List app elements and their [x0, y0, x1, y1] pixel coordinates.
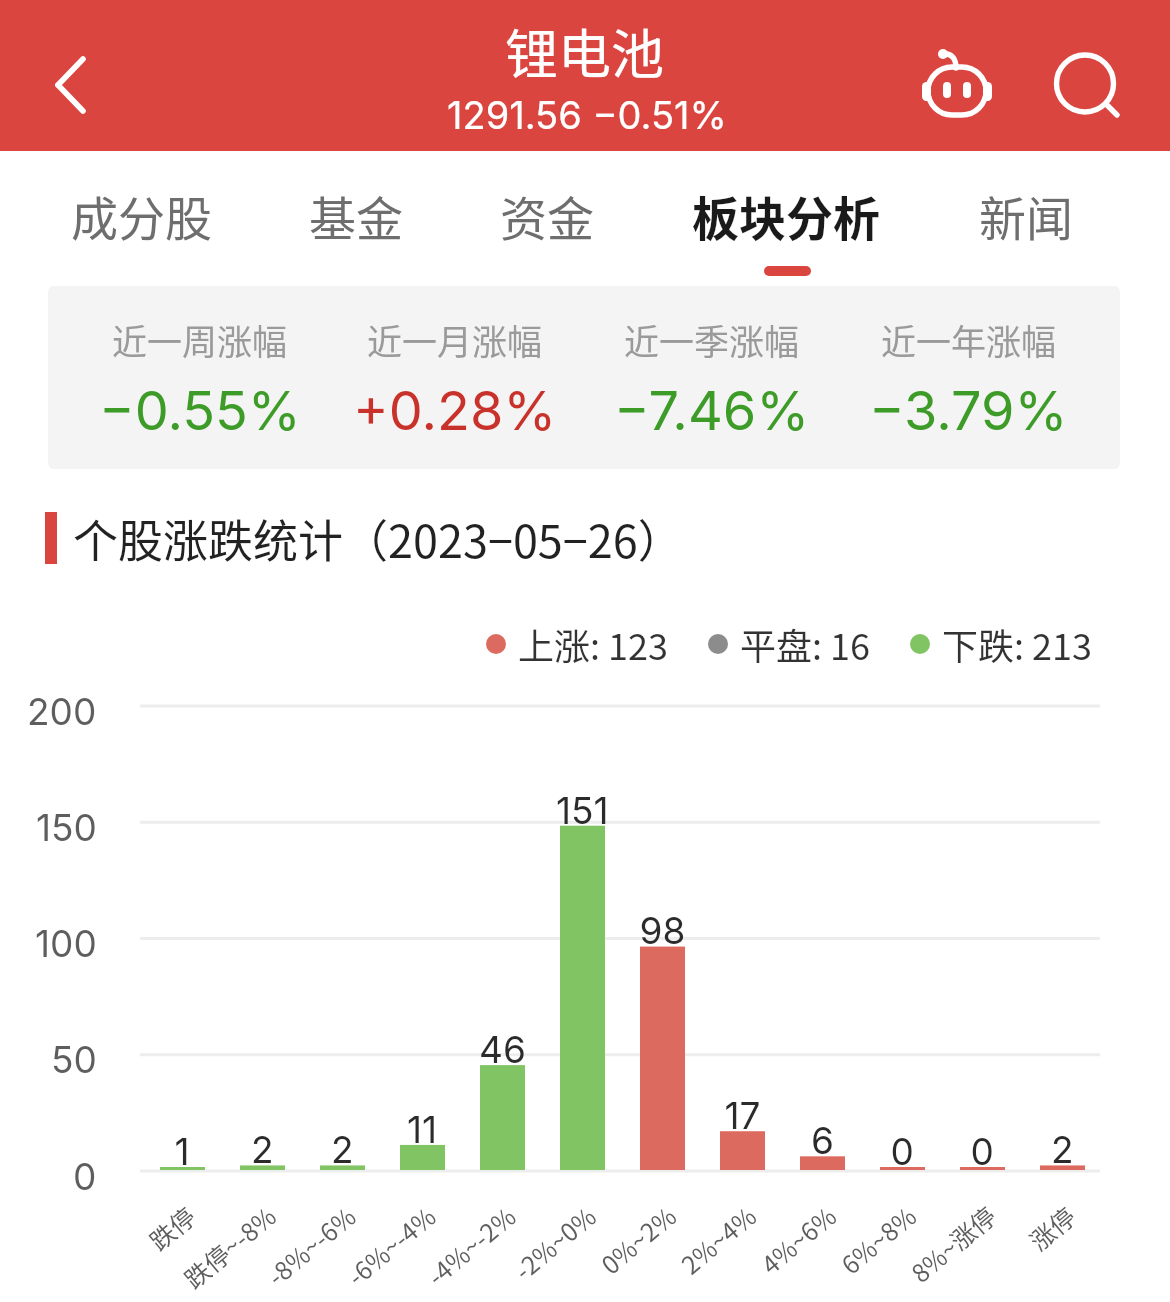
button[interactable]: Search — [1039, 38, 1131, 130]
button[interactable]: AI assistant — [911, 41, 1003, 133]
staticText: 近一季涨幅 — [624, 314, 800, 365]
staticText: −0.55% — [99, 378, 301, 443]
staticText: −7.46% — [614, 378, 810, 443]
staticText: 上涨: 123 — [518, 618, 669, 670]
button[interactable]: 新闻 — [953, 171, 1099, 259]
button[interactable]: Back — [26, 40, 116, 130]
staticText: 锂电池 — [505, 13, 664, 90]
button[interactable]: 近一月涨幅 — [327, 286, 583, 469]
staticText: 基金 — [309, 181, 403, 249]
staticText: 1291.56 −0.51% — [447, 92, 727, 138]
button[interactable]: 基金 — [283, 171, 429, 259]
staticText: 板块分析 — [692, 181, 880, 249]
staticText: −3.79% — [869, 378, 1068, 443]
staticText: 成分股 — [71, 181, 212, 249]
staticText: 近一年涨幅 — [881, 314, 1057, 365]
button[interactable]: 资金 — [474, 171, 620, 259]
button[interactable]: 板块分析 — [666, 171, 906, 259]
staticText: 近一月涨幅 — [367, 314, 543, 365]
button[interactable]: 近一年涨幅 — [840, 286, 1096, 469]
staticText: 平盘: 16 — [740, 618, 871, 670]
staticText: 个股涨跌统计（2023−05−26） — [73, 506, 683, 571]
button[interactable]: 成分股 — [45, 171, 238, 259]
staticText: 资金 — [500, 181, 594, 249]
staticText: 下跌: 213 — [942, 618, 1093, 670]
button[interactable]: 近一季涨幅 — [584, 286, 840, 469]
button[interactable]: 下跌: 213 — [910, 618, 1093, 670]
button[interactable]: 平盘: 16 — [708, 618, 871, 670]
staticText: 新闻 — [979, 181, 1073, 249]
staticText: +0.28% — [353, 378, 557, 443]
button[interactable]: 上涨: 123 — [486, 618, 669, 670]
button[interactable]: 近一周涨幅 — [72, 286, 328, 469]
staticText: 近一周涨幅 — [112, 314, 288, 365]
